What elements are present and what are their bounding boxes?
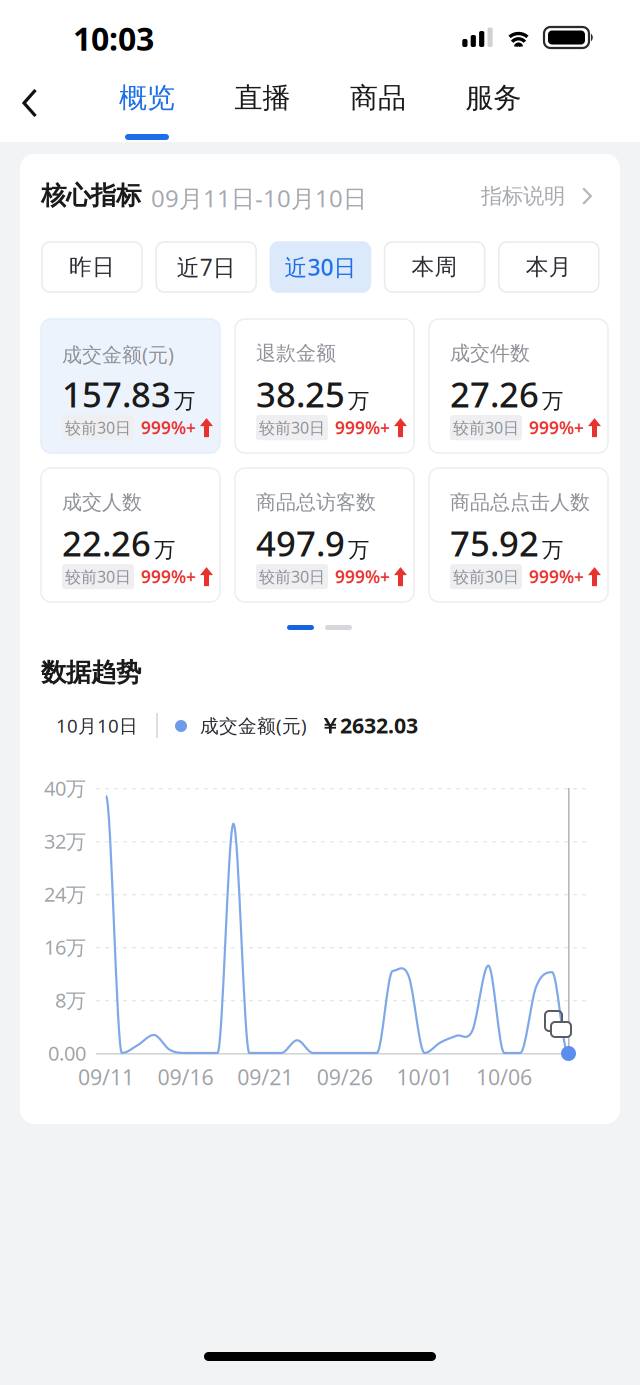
button[interactable]: 直播 (212, 78, 312, 142)
staticText: 本月 (526, 253, 572, 281)
staticText: 成交金额(元) (62, 341, 174, 368)
staticText: 成交人数 (62, 490, 142, 515)
staticText: 999%+ (141, 416, 196, 439)
staticText: 服务 (465, 81, 521, 115)
staticText: 商品总访客数 (256, 490, 376, 515)
button[interactable]: 昨日 (42, 242, 142, 292)
staticText: 38.25 (256, 371, 345, 417)
staticText: 0.00 (48, 1040, 86, 1066)
button[interactable]: 服务 (443, 78, 543, 142)
staticText: 较前30日 (65, 417, 131, 438)
button[interactable]: Back (4, 76, 56, 130)
staticText: 999%+ (335, 416, 390, 439)
staticText: 较前30日 (259, 566, 325, 587)
button[interactable]: 近7日 (156, 242, 256, 292)
staticText: 999%+ (529, 416, 584, 439)
button[interactable]: 概览 (97, 78, 197, 142)
staticText: 核心指标 (41, 180, 141, 211)
staticText: 27.26 (450, 371, 539, 417)
staticText: 商品 (350, 81, 406, 115)
staticText: 999%+ (529, 565, 584, 588)
button[interactable]: 成交人数 (41, 468, 220, 602)
staticText: 万 (542, 537, 563, 563)
staticText: 万 (154, 537, 175, 563)
button[interactable]: 成交金额(元) (41, 319, 220, 453)
staticText: 概览 (119, 81, 175, 115)
staticText: 75.92 (450, 520, 539, 566)
staticText: 成交件数 (450, 341, 530, 366)
staticText: 近30日 (284, 252, 356, 282)
staticText: 较前30日 (65, 566, 131, 587)
staticText: 10:03 (73, 17, 154, 59)
staticText: ￥2632.03 (319, 711, 418, 739)
staticText: 8万 (55, 987, 86, 1013)
staticText: 999%+ (141, 565, 196, 588)
staticText: 直播 (234, 81, 290, 115)
staticText: 10月10日 (56, 713, 138, 738)
staticText: 09/26 (317, 1063, 373, 1091)
staticText: 09/11 (78, 1063, 134, 1091)
staticText: 09月11日-10月10日 (151, 182, 367, 214)
staticText: 退款金额 (256, 341, 336, 366)
staticText: 万 (348, 537, 369, 563)
staticText: 10/06 (476, 1063, 532, 1091)
staticText: 40万 (44, 775, 86, 801)
button[interactable]: 本月 (499, 242, 599, 292)
staticText: 22.26 (62, 520, 151, 566)
staticText: 32万 (44, 828, 86, 854)
button[interactable]: 近30日 (270, 242, 370, 292)
staticText: 较前30日 (453, 566, 519, 587)
staticText: 数据趋势 (41, 657, 141, 688)
staticText: 497.9 (256, 520, 345, 566)
staticText: 商品总点击人数 (450, 490, 590, 515)
staticText: 157.83 (62, 371, 171, 417)
button[interactable]: 退款金额 (235, 319, 414, 453)
button[interactable]: 本周 (385, 242, 485, 292)
button[interactable]: 商品总点击人数 (429, 468, 608, 602)
button[interactable]: 商品 (328, 78, 428, 142)
staticText: 万 (542, 388, 563, 414)
staticText: 昨日 (69, 253, 115, 281)
staticText: 较前30日 (259, 417, 325, 438)
button[interactable]: 成交件数 (429, 319, 608, 453)
staticText: 万 (174, 388, 195, 414)
staticText: 本周 (412, 253, 458, 281)
staticText: 16万 (44, 934, 86, 960)
staticText: 09/21 (237, 1063, 293, 1091)
staticText: 指标说明 (481, 183, 565, 209)
button[interactable]: 指标说明 (481, 183, 592, 209)
staticText: 万 (348, 388, 369, 414)
staticText: 成交金额(元) (200, 713, 307, 738)
staticText: 24万 (44, 881, 86, 907)
staticText: 10/01 (396, 1063, 452, 1091)
staticText: 近7日 (177, 252, 236, 282)
staticText: 09/16 (158, 1063, 214, 1091)
button[interactable]: 商品总访客数 (235, 468, 414, 602)
staticText: 999%+ (335, 565, 390, 588)
staticText: 较前30日 (453, 417, 519, 438)
